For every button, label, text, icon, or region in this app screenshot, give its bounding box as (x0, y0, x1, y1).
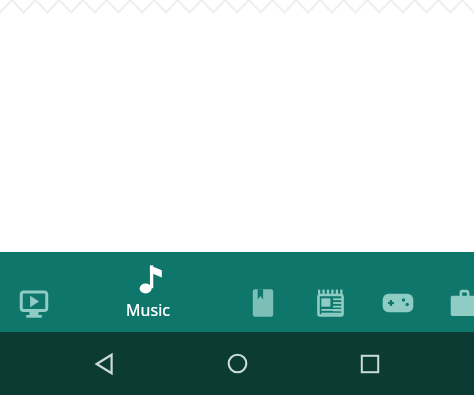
button[interactable]: Books (236, 276, 290, 330)
staticText: Music (126, 299, 170, 321)
button[interactable]: Games (371, 276, 425, 330)
button[interactable]: Movies & TV (7, 276, 61, 330)
button[interactable]: Recent apps (345, 332, 395, 395)
button[interactable]: Newsstand (303, 276, 357, 330)
button[interactable]: Back (80, 332, 130, 395)
button[interactable]: Work apps (437, 276, 474, 330)
button[interactable]: Music (110, 258, 186, 332)
button[interactable]: Home (212, 332, 262, 395)
